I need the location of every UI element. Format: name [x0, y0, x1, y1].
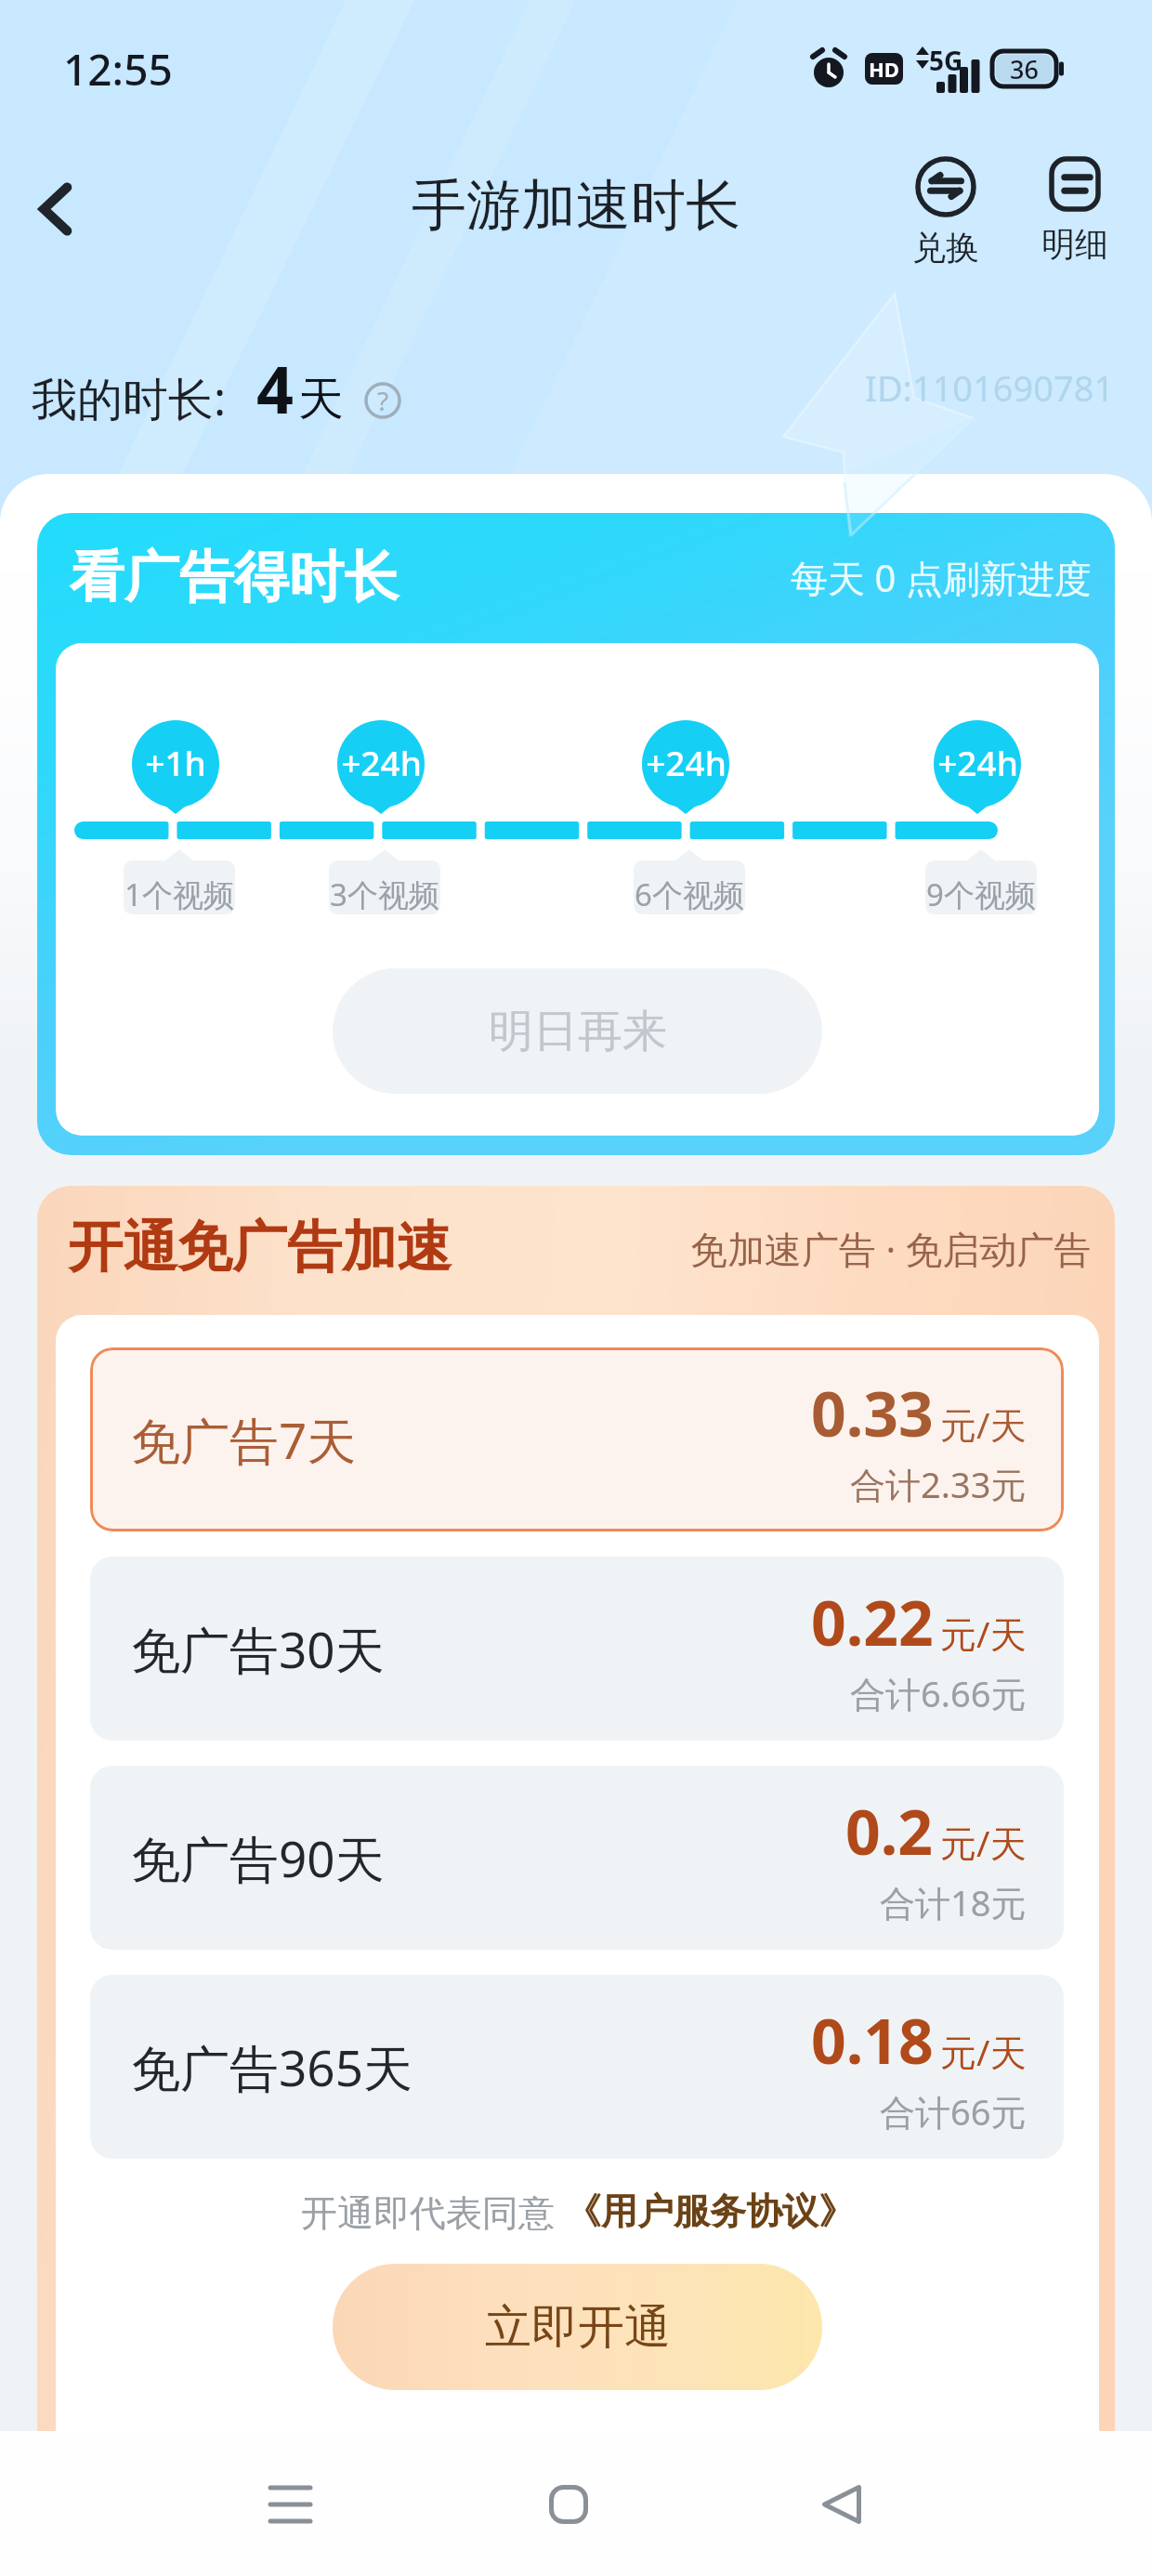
- staticText: 元/天: [940, 1609, 1027, 1658]
- staticText: 我的时长:: [32, 367, 227, 429]
- button[interactable]: 明细: [1024, 156, 1126, 265]
- staticText: +24h: [646, 739, 727, 785]
- staticText: ?: [377, 383, 389, 418]
- staticText: 免广告90天: [131, 1824, 385, 1891]
- button[interactable]: Help: [364, 382, 401, 419]
- staticText: 看广告得时长: [70, 543, 399, 611]
- staticText: 免加速广告 · 免启动广告: [690, 1223, 1092, 1274]
- staticText: ID:1101690781: [865, 363, 1115, 412]
- staticText: 0.2: [845, 1789, 934, 1873]
- staticText: 5G: [929, 43, 963, 78]
- staticText: 开通免广告加速: [68, 1213, 452, 1281]
- button[interactable]: 免广告365天: [90, 1975, 1064, 2159]
- staticText: 立即开通: [485, 2298, 671, 2357]
- staticText: 明细: [1041, 223, 1108, 265]
- staticText: 9个视频: [926, 874, 1036, 915]
- button[interactable]: 免广告30天: [90, 1557, 1064, 1741]
- button[interactable]: 明日再来: [333, 968, 822, 1094]
- staticText: 6个视频: [635, 874, 744, 915]
- staticText: 1个视频: [124, 874, 234, 915]
- staticText: 合计18元: [880, 1878, 1027, 1926]
- staticText: 0.18: [811, 1998, 934, 2082]
- button[interactable]: 兑换: [895, 156, 997, 269]
- button[interactable]: Recents: [253, 2467, 327, 2542]
- staticText: 元/天: [940, 2027, 1027, 2076]
- staticText: 兑换: [912, 227, 979, 269]
- button[interactable]: Back: [13, 166, 98, 252]
- staticText: +24h: [341, 739, 422, 785]
- button[interactable]: Back: [805, 2467, 879, 2542]
- staticText: 4: [256, 344, 295, 432]
- staticText: 0.22: [811, 1580, 934, 1663]
- staticText: 开通即代表同意: [301, 2187, 565, 2236]
- staticText: +24h: [937, 739, 1018, 785]
- button[interactable]: Home: [531, 2467, 606, 2542]
- staticText: 0.33: [811, 1371, 934, 1454]
- staticText: 免广告7天: [131, 1406, 357, 1473]
- staticText: 天: [298, 371, 344, 428]
- staticText: 36: [1010, 52, 1039, 86]
- staticText: 元/天: [940, 1818, 1027, 1867]
- staticText: 3个视频: [330, 874, 439, 915]
- button[interactable]: 立即开通: [333, 2264, 822, 2390]
- button[interactable]: 免广告7天: [90, 1347, 1064, 1531]
- button[interactable]: 免广告90天: [90, 1766, 1064, 1950]
- staticText: 手游加速时长: [412, 171, 740, 240]
- button[interactable]: 《用户服务协议》: [565, 2188, 855, 2234]
- staticText: 合计6.66元: [850, 1669, 1027, 1717]
- staticText: 每天 0 点刷新进度: [791, 552, 1092, 603]
- staticText: 12:55: [63, 40, 173, 99]
- staticText: 免广告365天: [131, 2033, 412, 2100]
- staticText: 明日再来: [489, 1004, 667, 1059]
- staticText: 免广告30天: [131, 1615, 385, 1682]
- staticText: 元/天: [940, 1400, 1027, 1449]
- staticText: HD: [869, 55, 899, 83]
- staticText: 合计66元: [880, 2087, 1027, 2136]
- staticText: +1h: [145, 739, 206, 785]
- staticText: 合计2.33元: [850, 1460, 1027, 1508]
